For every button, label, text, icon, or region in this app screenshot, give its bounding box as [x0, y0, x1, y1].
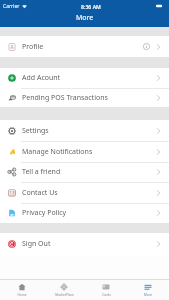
- staticText: Contact Us: [22, 188, 58, 198]
- button[interactable]: Privacy Policy: [0, 203, 169, 223]
- button[interactable]: Cards: [85, 280, 127, 300]
- staticText: Sign Out: [22, 239, 51, 249]
- button[interactable]: Settings: [0, 120, 169, 141]
- staticText: Tell a friend: [22, 167, 61, 177]
- button[interactable]: Add Acount: [0, 68, 169, 88]
- staticText: Settings: [22, 126, 49, 136]
- button[interactable]: Sign Out: [0, 233, 169, 255]
- staticText: Add Acount: [22, 73, 61, 83]
- staticText: MarketPlace: [55, 293, 74, 297]
- staticText: Profile: [22, 42, 44, 52]
- staticText: Cards: [102, 293, 111, 297]
- button[interactable]: Manage Notifications: [0, 141, 169, 162]
- button[interactable]: Contact Us: [0, 182, 169, 203]
- button[interactable]: Profile: [0, 36, 169, 57]
- staticText: More: [76, 13, 94, 23]
- button[interactable]: Pending POS Transactions: [0, 88, 169, 107]
- button[interactable]: More: [127, 280, 169, 300]
- other: Profile info: [143, 43, 150, 50]
- button[interactable]: Tell a friend: [0, 162, 169, 182]
- staticText: Carrier: [3, 3, 20, 10]
- staticText: Manage Notifications: [22, 147, 93, 157]
- staticText: Home: [17, 293, 27, 297]
- button[interactable]: Home: [0, 280, 43, 300]
- button[interactable]: MarketPlace: [43, 280, 85, 300]
- staticText: More: [144, 293, 152, 297]
- staticText: 8:36 AM: [81, 3, 101, 10]
- staticText: Privacy Policy: [22, 208, 67, 218]
- staticText: Pending POS Transactions: [22, 93, 108, 103]
